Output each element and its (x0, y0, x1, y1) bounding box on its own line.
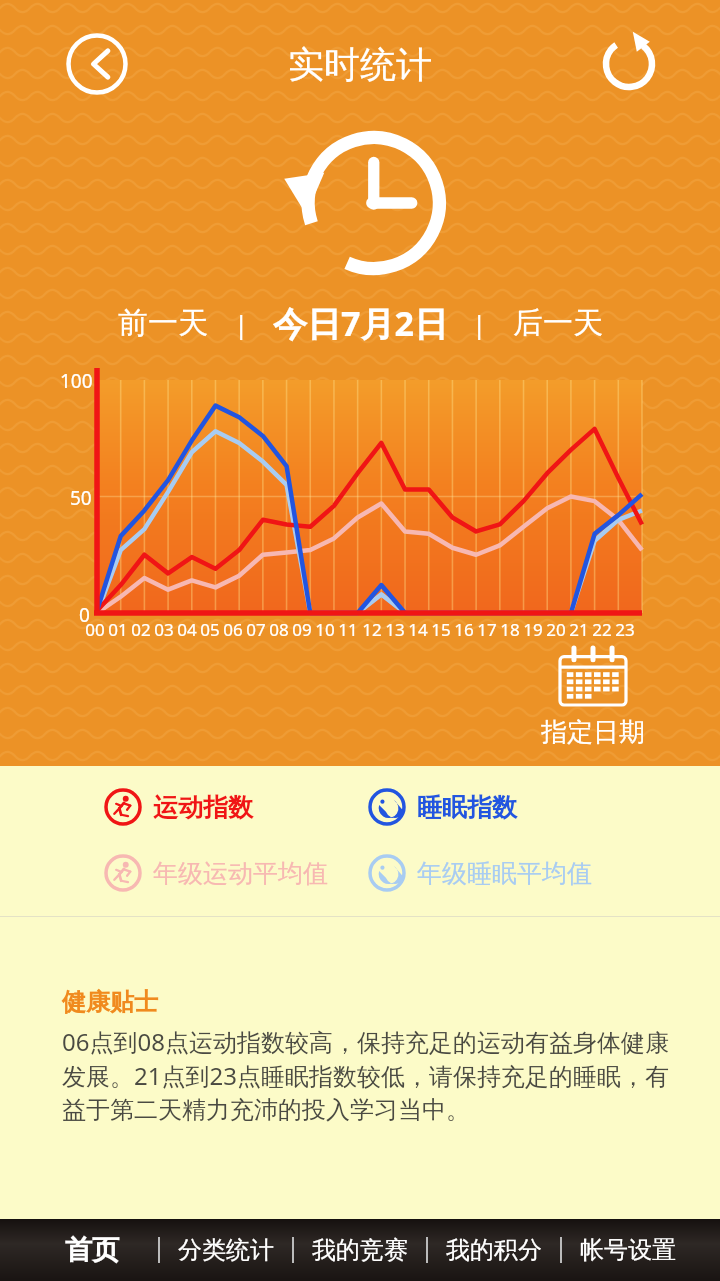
staticText: 后一天 (513, 304, 603, 342)
staticText: 帐号设置 (580, 1235, 676, 1265)
staticText: 11 (338, 618, 358, 641)
staticText: 健康贴士 (62, 987, 158, 1017)
staticText: 0 (79, 602, 90, 628)
staticText: 00 (85, 618, 105, 641)
staticText: 13 (385, 618, 405, 641)
staticText: 分类统计 (178, 1235, 274, 1265)
staticText: 今日7月2日 (273, 300, 448, 346)
staticText: 50 (70, 485, 92, 511)
staticText: 12 (362, 618, 382, 641)
staticText: 10 (315, 618, 335, 641)
staticText: 01 (108, 618, 128, 641)
button[interactable]: 首页 (26, 1219, 158, 1281)
staticText: 实时统计 (288, 42, 432, 87)
button[interactable]: 年级运动平均值 (104, 854, 360, 892)
staticText: 08 (269, 618, 289, 641)
staticText: 23 (615, 618, 635, 641)
staticText: 我的积分 (446, 1235, 542, 1265)
staticText: 02 (131, 618, 151, 641)
staticText: 15 (431, 618, 451, 641)
staticText: 09 (292, 618, 312, 641)
button[interactable]: 分类统计 (160, 1219, 292, 1281)
staticText: 年级睡眠平均值 (417, 858, 592, 889)
button[interactable]: 我的竞赛 (294, 1219, 426, 1281)
staticText: | (234, 306, 249, 341)
staticText: 18 (500, 618, 520, 641)
button[interactable]: 我的积分 (428, 1219, 560, 1281)
staticText: 07 (246, 618, 266, 641)
staticText: 03 (154, 618, 174, 641)
staticText: 22 (592, 618, 612, 641)
staticText: 首页 (65, 1233, 119, 1267)
staticText: 04 (177, 618, 197, 641)
staticText: 06点到08点运动指数较高，保持充足的运动有益身体健康发展。21点到23点睡眠指… (62, 1025, 670, 1125)
staticText: 100 (60, 368, 93, 394)
staticText: 我的竞赛 (312, 1235, 408, 1265)
button[interactable]: 运动指数 (104, 788, 360, 826)
button[interactable]: Refresh (600, 35, 658, 93)
staticText: | (472, 306, 487, 341)
staticText: 14 (408, 618, 428, 641)
button[interactable]: 后一天 (507, 300, 609, 346)
staticText: 16 (454, 618, 474, 641)
staticText: 06 (223, 618, 243, 641)
staticText: 运动指数 (153, 792, 253, 823)
button[interactable]: Back (66, 33, 128, 95)
staticText: 指定日期 (541, 716, 645, 749)
staticText: 19 (523, 618, 543, 641)
staticText: 睡眠指数 (417, 792, 517, 823)
staticText: 17 (477, 618, 497, 641)
staticText: 年级运动平均值 (153, 858, 328, 889)
button[interactable]: 今日7月2日 (269, 298, 452, 348)
button[interactable]: 指定日期 (528, 648, 658, 749)
button[interactable]: 年级睡眠平均值 (368, 854, 720, 892)
staticText: 20 (546, 618, 566, 641)
button[interactable]: 帐号设置 (562, 1219, 694, 1281)
staticText: 05 (200, 618, 220, 641)
button[interactable]: 前一天 (112, 300, 214, 346)
button[interactable]: 睡眠指数 (368, 788, 720, 826)
staticText: 21 (569, 618, 589, 641)
staticText: 前一天 (118, 304, 208, 342)
